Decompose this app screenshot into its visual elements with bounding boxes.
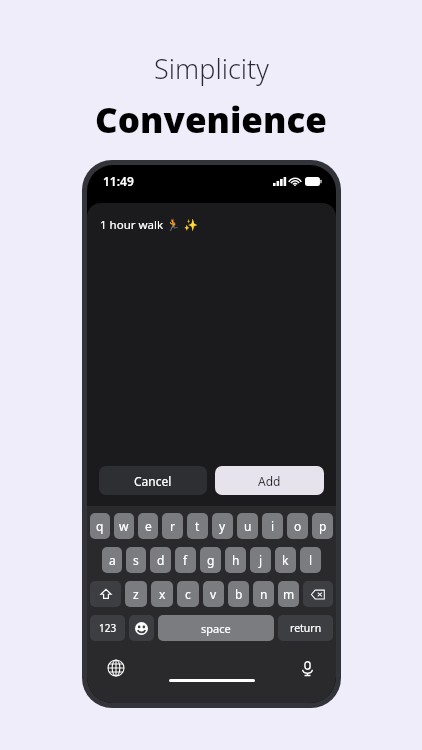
staticText: m: [283, 586, 295, 602]
staticText: q: [96, 518, 104, 534]
staticText: e: [145, 518, 152, 534]
staticText: j: [259, 552, 263, 568]
staticText: x: [159, 586, 166, 602]
button[interactable]: k: [275, 547, 296, 573]
button[interactable]: Change keyboard language: [105, 657, 127, 679]
staticText: Add: [258, 473, 281, 489]
button[interactable]: c: [177, 581, 199, 607]
button[interactable]: q: [90, 513, 110, 539]
button[interactable]: Shift: [90, 581, 121, 607]
button[interactable]: h: [225, 547, 246, 573]
button[interactable]: z: [125, 581, 147, 607]
button[interactable]: n: [253, 581, 274, 607]
button[interactable]: x: [151, 581, 173, 607]
button[interactable]: m: [278, 581, 299, 607]
staticText: h: [232, 552, 240, 568]
staticText: t: [195, 518, 200, 534]
button[interactable]: t: [187, 513, 208, 539]
button[interactable]: 123: [90, 615, 125, 641]
staticText: Convenience: [95, 96, 327, 144]
button[interactable]: a: [102, 547, 122, 573]
staticText: g: [207, 552, 215, 568]
button[interactable]: return: [278, 615, 333, 641]
button[interactable]: b: [228, 581, 249, 607]
staticText: z: [133, 586, 139, 602]
button[interactable]: r: [162, 513, 183, 539]
button[interactable]: Cancel: [99, 466, 207, 495]
button[interactable]: g: [200, 547, 221, 573]
button[interactable]: s: [126, 547, 146, 573]
staticText: s: [133, 552, 139, 568]
staticText: w: [119, 518, 129, 534]
button[interactable]: w: [114, 513, 134, 539]
button[interactable]: space: [158, 615, 274, 641]
button[interactable]: j: [250, 547, 271, 573]
staticText: p: [319, 518, 327, 534]
staticText: 11:49: [103, 173, 134, 189]
staticText: 1 hour walk 🏃 ✨: [100, 217, 198, 233]
staticText: Simplicity: [154, 50, 269, 87]
button[interactable]: l: [300, 547, 321, 573]
staticText: k: [282, 552, 289, 568]
button[interactable]: i: [262, 513, 283, 539]
staticText: a: [109, 552, 116, 568]
staticText: v: [210, 586, 217, 602]
button[interactable]: Emoji: [129, 615, 154, 641]
button[interactable]: Voice input: [296, 657, 318, 679]
button[interactable]: o: [287, 513, 308, 539]
button[interactable]: e: [138, 513, 158, 539]
button[interactable]: u: [237, 513, 258, 539]
staticText: f: [183, 552, 188, 568]
button[interactable]: d: [150, 547, 171, 573]
staticText: Cancel: [134, 473, 172, 489]
staticText: l: [309, 552, 313, 568]
button[interactable]: p: [312, 513, 333, 539]
button[interactable]: v: [203, 581, 224, 607]
staticText: c: [185, 586, 191, 602]
staticText: i: [271, 518, 275, 534]
staticText: u: [244, 518, 252, 534]
staticText: space: [201, 621, 231, 636]
staticText: b: [235, 586, 243, 602]
button[interactable]: f: [175, 547, 196, 573]
staticText: y: [219, 518, 226, 534]
staticText: 123: [99, 621, 117, 635]
staticText: d: [157, 552, 165, 568]
staticText: return: [290, 621, 322, 635]
button[interactable]: Add: [215, 466, 324, 495]
button[interactable]: Backspace: [303, 581, 333, 607]
staticText: r: [170, 518, 175, 534]
staticText: o: [294, 518, 302, 534]
staticText: n: [260, 586, 268, 602]
button[interactable]: y: [212, 513, 233, 539]
